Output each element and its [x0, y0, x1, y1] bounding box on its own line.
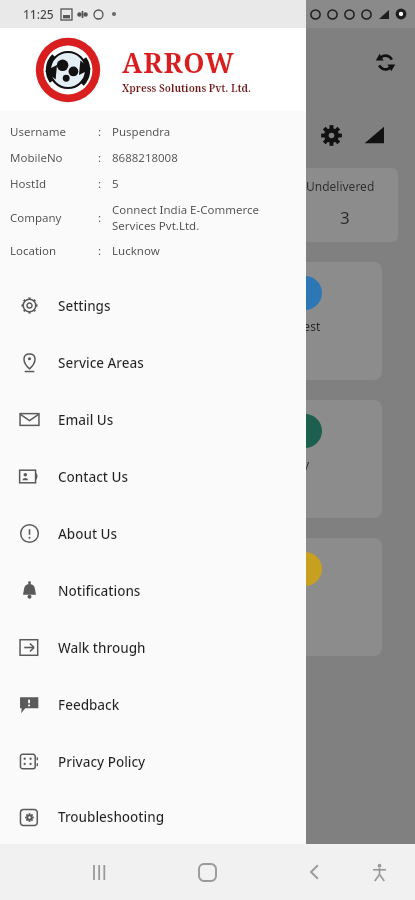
staticText: Puspendra	[112, 124, 171, 140]
staticText: 3	[340, 206, 350, 229]
button[interactable]: Home	[183, 848, 231, 896]
staticText: 8688218008	[112, 150, 178, 166]
button[interactable]: ng	[222, 538, 382, 656]
button[interactable]: lvery	[222, 400, 382, 518]
staticText: lvery	[282, 456, 310, 472]
staticText: :	[98, 210, 112, 226]
staticText: Service Areas	[58, 354, 144, 372]
staticText: Contact Us	[58, 468, 129, 486]
staticText: ARROW	[122, 44, 235, 81]
button[interactable]: Feedback	[0, 676, 306, 733]
button[interactable]: Walk through	[0, 619, 306, 676]
staticText: Settings	[58, 297, 111, 315]
button[interactable]: anifest	[222, 262, 382, 380]
staticText: :	[98, 176, 112, 192]
button[interactable]: About Us	[0, 505, 306, 562]
staticText: Username	[10, 124, 98, 140]
staticText: MobileNo	[10, 150, 98, 166]
staticText: About Us	[58, 525, 118, 543]
staticText: Troubleshooting	[58, 808, 165, 826]
button[interactable]: Service Areas	[0, 334, 306, 391]
staticText: Feedback	[58, 696, 120, 714]
button[interactable]: Recents	[76, 848, 124, 896]
staticText: Privacy Policy	[58, 753, 146, 771]
button[interactable]: Contact Us	[0, 448, 306, 505]
button[interactable]: Accessibility	[355, 848, 403, 896]
staticText: :	[98, 124, 112, 140]
button[interactable]: Undelivered	[302, 168, 398, 242]
staticText: 11:25	[23, 6, 54, 22]
staticText: Email Us	[58, 411, 114, 429]
staticText: :	[98, 150, 112, 166]
staticText: Location	[10, 243, 98, 259]
staticText: Undelivered	[306, 178, 375, 194]
staticText: Lucknow	[112, 243, 160, 259]
button[interactable]: Back	[291, 848, 339, 896]
button[interactable]: Notifications	[0, 562, 306, 619]
staticText: Connect India E-Commerce Services Pvt.Lt…	[112, 202, 259, 233]
button[interactable]: Refresh	[363, 40, 407, 84]
staticText: Notifications	[58, 582, 141, 600]
button[interactable]: Email Us	[0, 391, 306, 448]
button[interactable]: Privacy Policy	[0, 733, 306, 790]
button[interactable]: Troubleshooting	[0, 790, 306, 844]
staticText: 5	[112, 176, 119, 192]
staticText: anifest	[282, 318, 321, 334]
staticText: HostId	[10, 176, 98, 192]
button[interactable]: Settings	[310, 114, 352, 156]
staticText: Walk through	[58, 639, 146, 657]
staticText: Xpress Solutions Pvt. Ltd.	[122, 81, 251, 95]
staticText: :	[98, 243, 112, 259]
button[interactable]: Settings	[0, 277, 306, 334]
staticText: Company	[10, 210, 98, 226]
